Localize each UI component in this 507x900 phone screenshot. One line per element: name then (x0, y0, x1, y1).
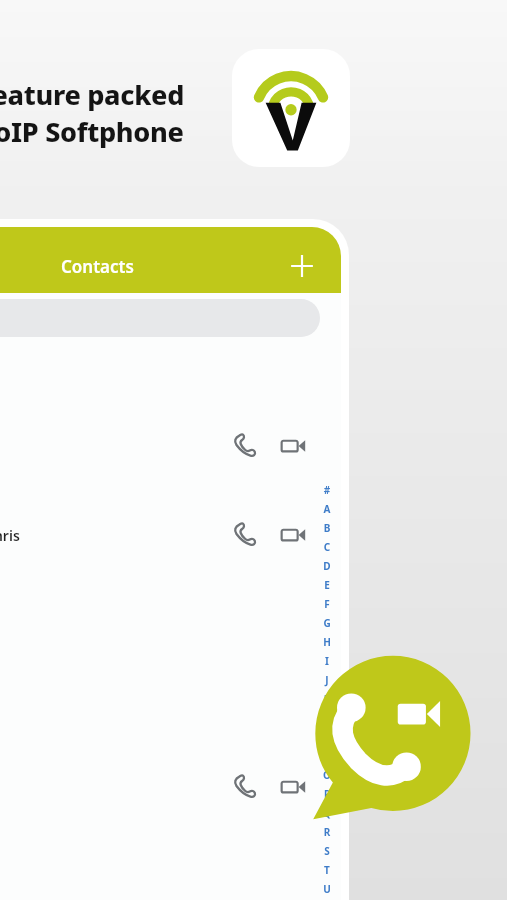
staticText: P (318, 787, 336, 801)
staticText: B (318, 521, 336, 535)
button[interactable]: Call (228, 519, 260, 551)
staticText: Feature packed (0, 76, 185, 113)
staticText: A (318, 502, 336, 516)
staticText: J (318, 673, 336, 687)
staticText: Q (318, 806, 336, 820)
button[interactable] (0, 607, 341, 643)
staticText: T (318, 863, 336, 877)
staticText: Chris (0, 526, 20, 545)
staticText: D (318, 559, 336, 573)
staticText: M (318, 730, 336, 744)
button[interactable]: VoIP Softphone app icon (232, 49, 350, 167)
staticText: H (318, 635, 336, 649)
staticText: # (318, 483, 336, 497)
staticText: L (318, 711, 336, 725)
button[interactable] (0, 696, 341, 732)
staticText: S (318, 844, 336, 858)
staticText: K (318, 692, 336, 706)
button[interactable]: Add contact (285, 249, 319, 283)
staticText: N (318, 749, 336, 763)
staticText: VoIP Softphone (0, 113, 184, 150)
button[interactable]: New call or video call (310, 662, 471, 820)
button[interactable]: Video call (277, 771, 309, 803)
staticText: I (318, 654, 336, 668)
button[interactable]: Call (228, 430, 260, 462)
button[interactable]: Alphabet index (318, 483, 336, 900)
staticText: R (318, 825, 336, 839)
staticText: E (318, 578, 336, 592)
button[interactable]: Call (0, 428, 341, 464)
staticText: O (318, 768, 336, 782)
staticText: U (318, 882, 336, 896)
button[interactable]: Video call (277, 430, 309, 462)
staticText: C (318, 540, 336, 554)
staticText: G (318, 616, 336, 630)
button[interactable]: Call (228, 771, 260, 803)
staticText: Contacts (61, 255, 134, 278)
staticText: F (318, 597, 336, 611)
button[interactable]: Video call (277, 519, 309, 551)
button[interactable]: Call (0, 769, 341, 805)
button[interactable]: Chris (0, 517, 341, 553)
